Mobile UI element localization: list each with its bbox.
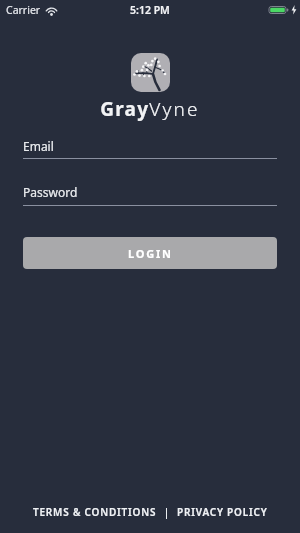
button[interactable]: Password xyxy=(23,184,277,206)
staticText: GrayVyne xyxy=(0,96,300,122)
staticText: Password xyxy=(23,184,78,200)
staticText: | xyxy=(157,505,177,519)
staticText: LOGIN xyxy=(128,246,173,261)
staticText: Email xyxy=(23,138,54,154)
staticText: Carrier xyxy=(6,3,41,17)
button[interactable]: Email xyxy=(23,138,277,159)
button[interactable]: PRIVACY POLICY xyxy=(177,505,268,519)
staticText: 5:12 PM xyxy=(130,3,170,17)
button[interactable]: LOGIN xyxy=(23,237,277,269)
button[interactable]: TERMS & CONDITIONS xyxy=(33,505,157,519)
